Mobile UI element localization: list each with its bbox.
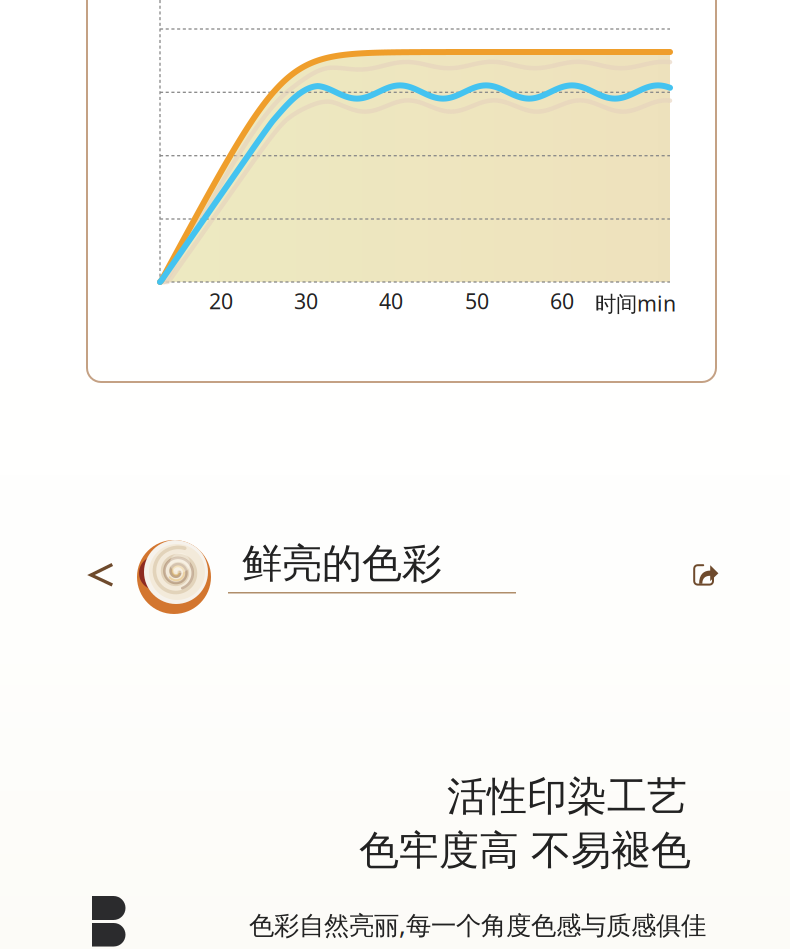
staticText: 色彩自然亮丽,每一个角度色感与质感俱佳 — [249, 908, 706, 942]
button[interactable]: Back — [83, 555, 123, 595]
staticText: 60 — [550, 287, 574, 315]
staticText: 活性印染工艺 — [447, 772, 687, 821]
staticText: 20 — [209, 287, 233, 315]
button[interactable]: Share — [683, 554, 730, 597]
button[interactable]: 鲜亮的色彩 — [242, 539, 442, 588]
staticText: 时间min — [595, 289, 676, 317]
staticText: 50 — [465, 287, 489, 315]
staticText: 鲜亮的色彩 — [242, 539, 442, 588]
staticText: 色牢度高 不易褪色 — [359, 826, 691, 875]
staticText: 40 — [379, 287, 403, 315]
staticText: 30 — [294, 287, 318, 315]
